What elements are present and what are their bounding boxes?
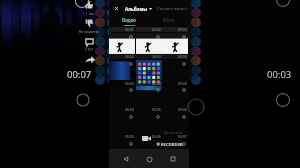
staticText: 00:03: [125, 81, 134, 86]
button[interactable]: 00:03: [162, 6, 188, 32]
button[interactable]: 00:01: [109, 6, 135, 32]
staticText: 00:01: [125, 27, 134, 32]
button[interactable]: Share: [81, 55, 97, 73]
button[interactable]: Close: [112, 4, 121, 13]
staticText: 00:06: [178, 107, 187, 112]
staticText: Записано: [164, 130, 183, 135]
button[interactable]: 00:04: [162, 33, 188, 59]
button[interactable]: 00:05: [162, 60, 188, 86]
button[interactable]: 00:03: [109, 60, 135, 86]
button[interactable]: 00:06: [162, 86, 188, 112]
staticText: 00:05: [125, 134, 134, 139]
button[interactable]: Альбомы: [125, 6, 152, 12]
staticText: 1,1 тыс.: [78, 11, 100, 16]
button[interactable]: 00:06: [109, 140, 135, 166]
staticText: 00:03: [267, 68, 292, 81]
staticText: Фото: [163, 17, 175, 23]
button[interactable]: 00:02: [109, 33, 135, 59]
button[interactable]: Dislike: [81, 18, 97, 36]
staticText: 00:05: [178, 81, 187, 86]
button[interactable]: Home: [142, 152, 156, 166]
button[interactable]: Comment: [81, 37, 97, 55]
button[interactable]: Back: [119, 152, 133, 166]
staticText: 00:02: [125, 54, 134, 59]
staticText: 00:04: [125, 107, 134, 112]
staticText: 00:04: [178, 54, 187, 59]
button[interactable]: 00:04: [109, 86, 135, 112]
button[interactable]: Like: [81, 0, 97, 18]
staticText: 00:07: [178, 134, 187, 139]
button[interactable]: 00:08: [162, 140, 188, 166]
staticText: 2 767: [78, 47, 100, 52]
staticText: 00:03: [178, 27, 187, 32]
button[interactable]: 00:03: [136, 33, 162, 59]
staticText: 00:02: [152, 27, 161, 32]
staticText: 00:04: [152, 81, 161, 86]
button[interactable]: Создать видео: [157, 6, 187, 12]
staticText: Видео: [122, 17, 136, 23]
button[interactable]: 00:05: [136, 86, 162, 112]
button[interactable]: 00:05: [109, 113, 135, 139]
staticText: Альбомы: [125, 6, 148, 12]
button[interactable]: 00:04: [136, 60, 162, 86]
staticText: 00:06: [152, 134, 161, 139]
button[interactable]: 00:02: [136, 6, 162, 32]
staticText: V RECORDER: [157, 142, 183, 148]
button[interactable]: 00:06: [136, 113, 162, 139]
staticText: 00:07: [67, 68, 92, 81]
button[interactable]: Recents: [166, 152, 180, 166]
staticText: Не нравится: [78, 29, 100, 34]
staticText: 00:06: [125, 161, 134, 166]
staticText: 00:05: [152, 107, 161, 112]
staticText: 00:03: [152, 54, 161, 59]
button[interactable]: Видео: [109, 17, 149, 27]
button[interactable]: Фото: [149, 17, 189, 27]
button[interactable]: 00:07: [136, 140, 162, 166]
button[interactable]: 00:07: [162, 113, 188, 139]
